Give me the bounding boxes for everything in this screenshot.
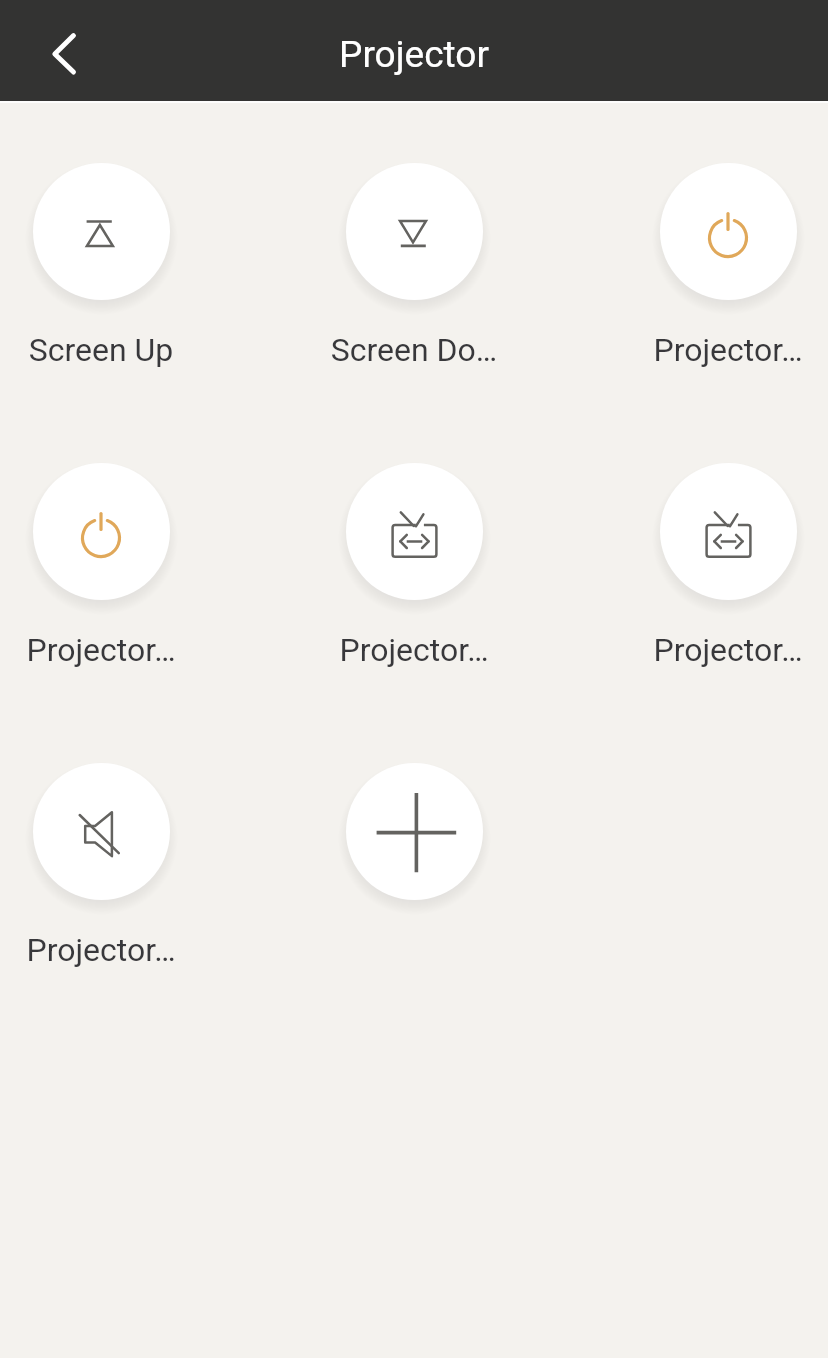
button[interactable]: Add command — [346, 763, 483, 900]
staticText: Screen Do… — [264, 331, 564, 369]
staticText: Screen Up — [0, 331, 251, 369]
staticText: Projector… — [0, 931, 251, 969]
button[interactable]: Back — [22, 18, 88, 84]
button[interactable]: Projector Mute — [33, 763, 170, 900]
button[interactable]: Screen Up — [33, 163, 170, 300]
staticText: Projector… — [578, 631, 828, 669]
button[interactable]: Projector On — [660, 163, 797, 300]
staticText: Projector… — [578, 331, 828, 369]
button[interactable]: Screen Down — [346, 163, 483, 300]
staticText: Projector — [0, 33, 828, 76]
staticText: Projector… — [0, 631, 251, 669]
button[interactable]: Projector Source — [346, 463, 483, 600]
staticText: Projector… — [264, 631, 564, 669]
button[interactable]: Projector Input — [660, 463, 797, 600]
button[interactable]: Projector Off — [33, 463, 170, 600]
